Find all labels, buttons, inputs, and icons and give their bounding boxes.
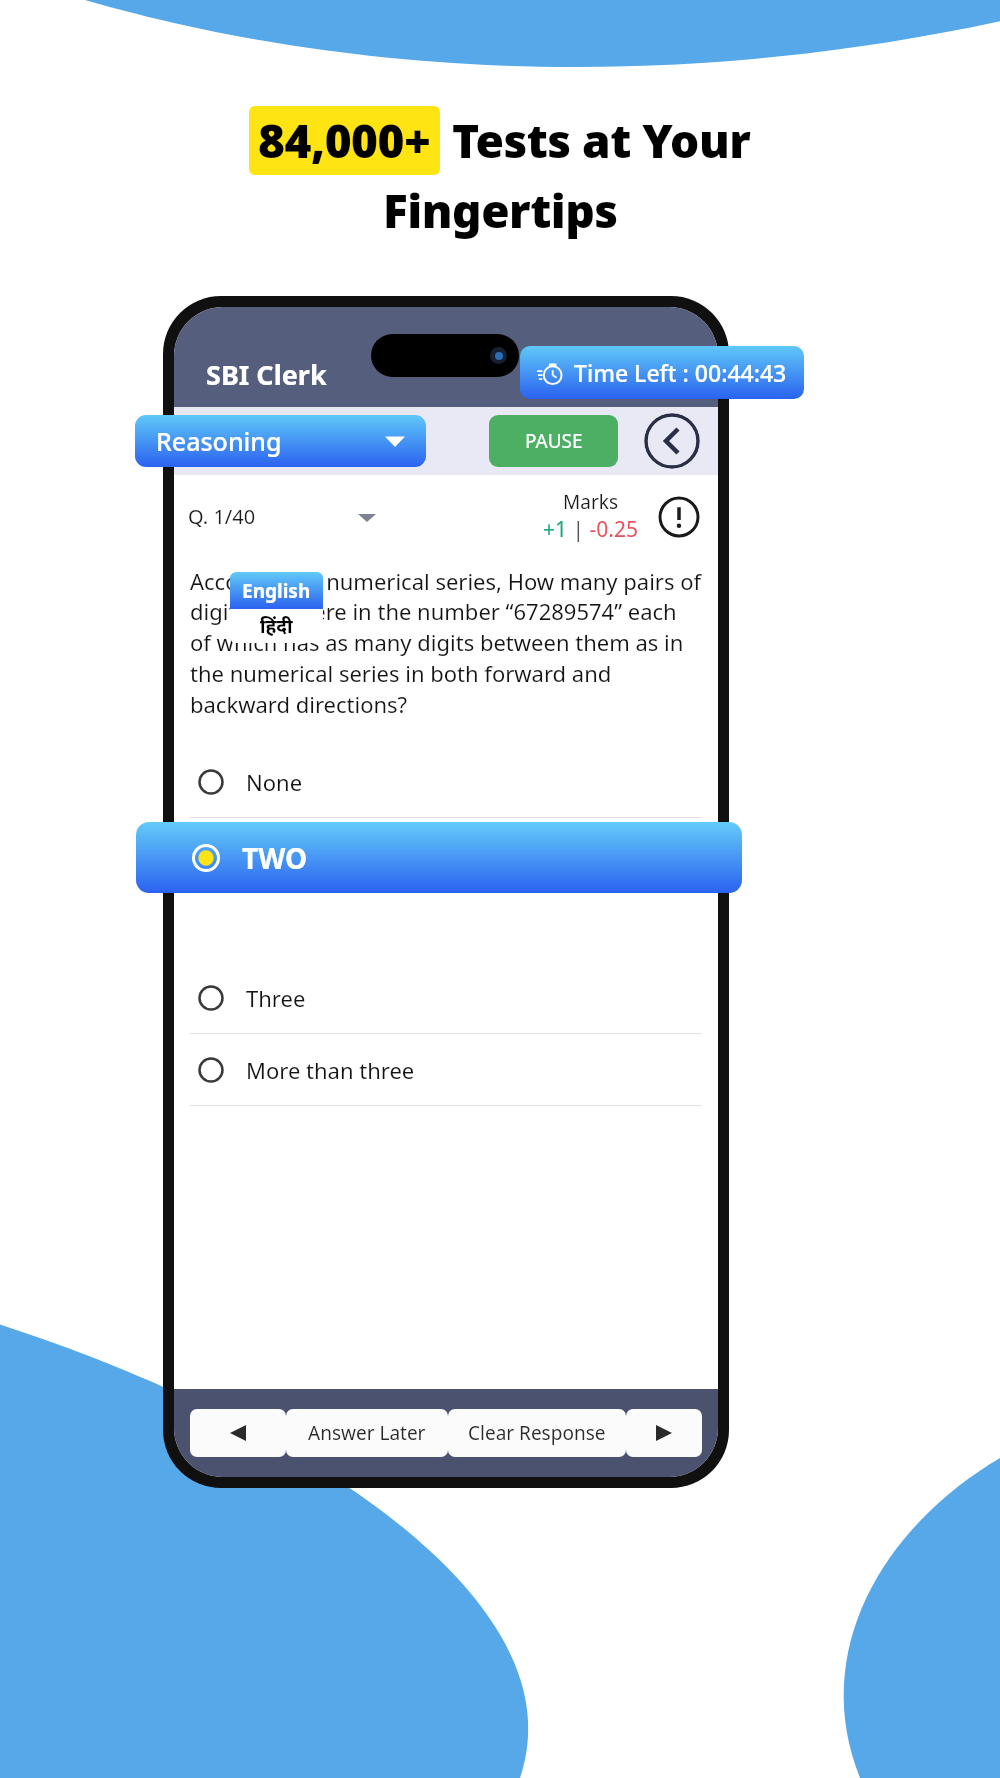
staticText: SBI Clerk bbox=[206, 356, 327, 393]
staticText: Time Left : 00:44:43 bbox=[574, 357, 787, 388]
button[interactable]: Time Left : 00:44:43 bbox=[520, 346, 804, 399]
staticText: Marks bbox=[563, 489, 618, 515]
button[interactable]: हिंदी bbox=[230, 609, 323, 643]
staticText: +1 | -0.25 bbox=[543, 515, 638, 544]
button[interactable]: Previous bbox=[190, 1409, 286, 1457]
staticText: Clear Response bbox=[468, 1420, 606, 1446]
button[interactable]: TWO bbox=[136, 822, 742, 893]
button[interactable]: PAUSE bbox=[489, 415, 618, 467]
staticText: According to numerical series, How many … bbox=[190, 566, 702, 720]
staticText: One bbox=[246, 839, 290, 869]
staticText: PAUSE bbox=[525, 428, 583, 454]
button[interactable]: Back bbox=[644, 413, 700, 469]
staticText: Answer Later bbox=[308, 1420, 426, 1446]
button[interactable]: Three bbox=[174, 962, 718, 1033]
button[interactable]: Reasoning bbox=[135, 415, 426, 467]
staticText: Three bbox=[246, 983, 306, 1013]
button[interactable]: None bbox=[174, 746, 718, 817]
staticText: Q. 1/40 bbox=[188, 503, 256, 530]
button[interactable]: English bbox=[230, 572, 323, 609]
staticText: Tests at Your bbox=[452, 109, 751, 172]
button[interactable]: Info bbox=[658, 496, 700, 538]
button[interactable]: Answer Later bbox=[286, 1409, 448, 1457]
staticText: Reasoning bbox=[156, 424, 282, 458]
staticText: हिंदी bbox=[260, 613, 293, 639]
staticText: Fingertips bbox=[383, 179, 618, 242]
staticText: TWO bbox=[242, 839, 308, 877]
staticText: More than three bbox=[246, 1055, 415, 1085]
staticText: None bbox=[246, 767, 303, 797]
button[interactable]: One bbox=[174, 818, 718, 889]
staticText: 84,000+ bbox=[258, 109, 431, 172]
button[interactable]: Clear Response bbox=[448, 1409, 626, 1457]
staticText: English bbox=[242, 578, 311, 604]
button[interactable]: More than three bbox=[174, 1034, 718, 1105]
button[interactable]: Next bbox=[626, 1409, 702, 1457]
